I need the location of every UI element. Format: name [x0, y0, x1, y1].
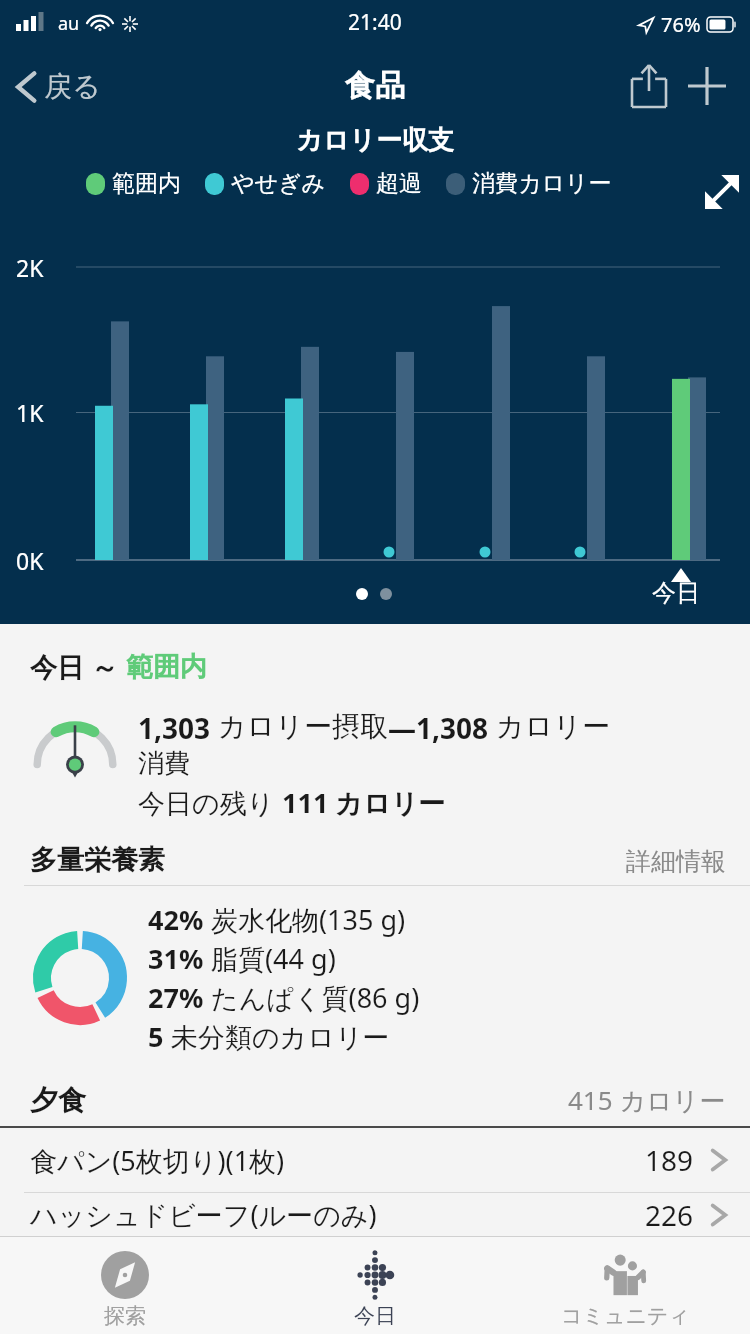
button[interactable]: Expand chart: [694, 164, 750, 220]
staticText: 189: [645, 1141, 694, 1179]
button[interactable]: Add: [678, 57, 736, 115]
staticText: カロリー摂取: [218, 709, 388, 744]
staticText: 今日の残り: [138, 784, 282, 821]
staticText: 食品: [345, 67, 405, 105]
staticText: 2K: [16, 252, 44, 283]
staticText: 今日 ～: [30, 648, 126, 685]
button[interactable]: コミュニティ: [500, 1237, 750, 1334]
staticText: コミュニティ: [561, 1303, 690, 1329]
staticText: 1,303: [138, 709, 218, 747]
staticText: 炭水化物(135 g): [204, 901, 406, 938]
button[interactable]: 食パン(5枚切り)(1枚): [0, 1128, 750, 1192]
staticText: 多量栄養素: [30, 843, 165, 877]
button[interactable]: Share: [620, 57, 678, 115]
staticText: 0K: [16, 545, 44, 576]
button[interactable]: 1,303: [0, 707, 750, 821]
staticText: 76%: [661, 11, 701, 38]
staticText: 消費カロリー: [472, 169, 612, 198]
staticText: 今日: [652, 578, 700, 608]
staticText: カロリー: [496, 709, 610, 744]
staticText: 今日: [354, 1303, 396, 1329]
staticText: 111 カロリー: [282, 784, 446, 821]
staticText: 未分類のカロリー: [164, 1018, 390, 1055]
staticText: 21:40: [348, 8, 402, 37]
button[interactable]: 今日: [250, 1237, 500, 1334]
button[interactable]: 多量栄養素: [0, 843, 750, 877]
button[interactable]: ハッシュドビーフ(ルーのみ): [0, 1193, 750, 1236]
staticText: 5: [148, 1018, 164, 1055]
staticText: 範囲内: [126, 650, 207, 684]
staticText: 夕食: [30, 1083, 86, 1118]
button[interactable]: 夕食: [0, 1082, 750, 1118]
staticText: 詳細情報: [626, 846, 726, 877]
staticText: 食パン(5枚切り)(1枚): [30, 1142, 285, 1179]
staticText: 226: [645, 1196, 694, 1234]
button[interactable]: 戻る: [0, 69, 111, 104]
staticText: ハッシュドビーフ(ルーのみ): [30, 1196, 377, 1233]
staticText: 戻る: [44, 69, 101, 104]
button[interactable]: 探索: [0, 1237, 250, 1334]
staticText: やせぎみ: [231, 169, 326, 198]
staticText: 1K: [16, 397, 44, 428]
staticText: カロリー収支: [0, 124, 750, 157]
staticText: 27%: [148, 979, 204, 1016]
staticText: 消費: [138, 747, 190, 780]
staticText: 脂質(44 g): [204, 940, 336, 977]
staticText: au: [58, 11, 80, 36]
staticText: 超過: [376, 169, 422, 198]
staticText: —1,308: [388, 709, 496, 747]
staticText: 31%: [148, 940, 204, 977]
staticText: 範囲内: [112, 169, 181, 198]
staticText: 42%: [148, 901, 204, 938]
staticText: たんぱく質(86 g): [204, 979, 420, 1016]
staticText: 探索: [104, 1303, 146, 1329]
staticText: 415 カロリー: [568, 1082, 726, 1118]
